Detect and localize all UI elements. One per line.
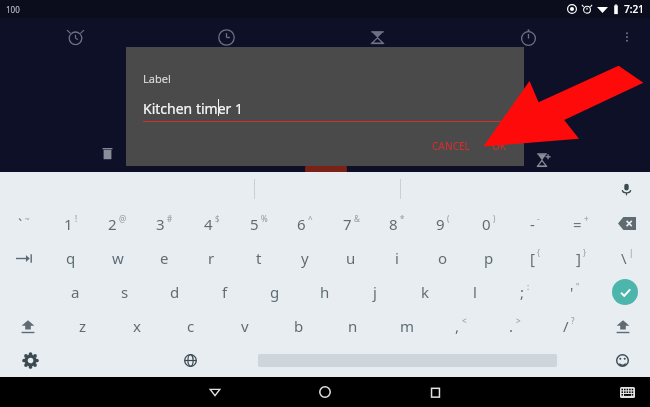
button[interactable]: i (374, 241, 420, 275)
button[interactable] (600, 275, 650, 309)
button[interactable]: e (141, 241, 188, 275)
button[interactable]: / (542, 309, 596, 343)
button[interactable] (151, 18, 302, 56)
staticText: ] (576, 248, 581, 268)
staticText: > (516, 315, 521, 326)
button[interactable]: g (250, 275, 300, 309)
button[interactable]: , (434, 309, 488, 343)
button[interactable]: Emoji (594, 343, 650, 377)
button[interactable]: v (218, 309, 272, 343)
staticText: { (537, 247, 541, 258)
button[interactable]: 9 (420, 206, 466, 241)
button[interactable]: n (326, 309, 380, 343)
staticText: ' (570, 282, 574, 302)
staticText: ^ (308, 213, 313, 224)
button[interactable] (302, 18, 453, 56)
button[interactable]: Delete (96, 142, 118, 164)
button[interactable]: . (488, 309, 542, 343)
staticText: - (537, 213, 540, 224)
button[interactable]: Back (200, 377, 230, 407)
button[interactable]: More options (604, 18, 650, 56)
staticText: Label (143, 71, 171, 86)
button[interactable]: 4 (188, 206, 235, 241)
staticText: : (527, 281, 530, 292)
button[interactable]: OK (481, 132, 518, 160)
button[interactable]: l (450, 275, 500, 309)
button[interactable]: r (188, 241, 235, 275)
button[interactable]: ] (558, 241, 604, 275)
button[interactable]: w (94, 241, 141, 275)
button[interactable]: 7 (328, 206, 374, 241)
button[interactable]: u (328, 241, 374, 275)
staticText: 7 (343, 214, 352, 234)
button[interactable]: ` (0, 206, 47, 241)
staticText: # (167, 213, 173, 224)
button[interactable]: b (272, 309, 326, 343)
staticText: = (573, 214, 582, 234)
button[interactable]: z (55, 309, 110, 343)
button[interactable] (0, 241, 47, 275)
button[interactable]: k (400, 275, 450, 309)
button[interactable]: Recent apps (420, 377, 450, 407)
staticText: y (301, 248, 309, 268)
staticText: 9 (436, 214, 445, 234)
button[interactable] (0, 309, 55, 343)
staticText: * (400, 213, 405, 224)
button[interactable]: 8 (374, 206, 420, 241)
button[interactable]: - (512, 206, 558, 241)
staticText: q (66, 248, 76, 268)
button[interactable] (596, 309, 650, 343)
button[interactable]: o (420, 241, 466, 275)
staticText: 1 (64, 214, 73, 234)
button[interactable]: f (200, 275, 250, 309)
staticText: ? (571, 315, 575, 326)
button[interactable]: Add timer (528, 146, 556, 174)
button[interactable]: 5 (235, 206, 282, 241)
button[interactable]: 2 (94, 206, 141, 241)
button[interactable]: t (235, 241, 282, 275)
staticText: 4 (204, 214, 213, 234)
button[interactable]: Settings (0, 343, 60, 377)
button[interactable] (453, 18, 604, 56)
button[interactable]: m (380, 309, 434, 343)
staticText: g (270, 282, 280, 302)
button[interactable]: y (282, 241, 328, 275)
button[interactable]: x (110, 309, 164, 343)
button[interactable]: j (350, 275, 400, 309)
button[interactable]: q (47, 241, 94, 275)
button[interactable]: c (164, 309, 218, 343)
button[interactable]: = (558, 206, 604, 241)
staticText: p (484, 248, 494, 268)
staticText: o (438, 248, 448, 268)
button[interactable]: 0 (466, 206, 512, 241)
staticText: d (170, 282, 180, 302)
button[interactable]: a (50, 275, 100, 309)
button[interactable]: 1 (47, 206, 94, 241)
button[interactable]: Start (305, 148, 347, 190)
button[interactable]: Space (220, 343, 594, 377)
button[interactable]: ' (550, 275, 600, 309)
button[interactable]: [ (512, 241, 558, 275)
staticText: ! (75, 213, 78, 224)
button[interactable]: 3 (141, 206, 188, 241)
staticText: ( (447, 213, 450, 224)
staticText: j (373, 282, 377, 302)
button[interactable] (0, 18, 151, 56)
button[interactable]: Home (310, 377, 340, 407)
button[interactable]: h (300, 275, 350, 309)
button[interactable]: Hide keyboard (614, 379, 640, 405)
button[interactable]: d (150, 275, 200, 309)
button[interactable]: p (466, 241, 512, 275)
button[interactable]: \ (604, 241, 650, 275)
button[interactable] (604, 206, 650, 241)
staticText: } (583, 247, 587, 258)
button[interactable]: 6 (282, 206, 328, 241)
button[interactable]: ; (500, 275, 550, 309)
button[interactable]: CANCEL (421, 132, 481, 160)
staticText: x (133, 316, 141, 336)
button[interactable]: Voice input (616, 179, 636, 199)
staticText: + (584, 213, 589, 224)
button[interactable]: s (100, 275, 150, 309)
button[interactable]: Change language (160, 343, 220, 377)
